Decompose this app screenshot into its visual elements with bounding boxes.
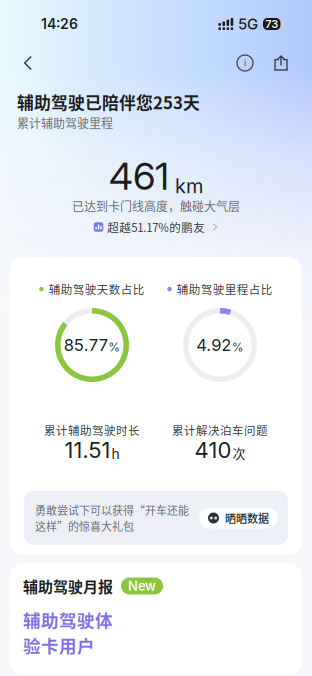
button[interactable]: Info [231, 49, 259, 77]
button[interactable]: 辅助驾驶月报 [0, 563, 312, 675]
button[interactable]: 超越51.17%的鹏友 [91, 220, 221, 234]
staticText: 73 [265, 17, 278, 31]
button[interactable]: Back [11, 48, 45, 78]
staticText: 辅助驾驶体 验卡用户 [23, 607, 113, 658]
staticText: 14:26 [41, 15, 78, 32]
staticText: 11.51 [64, 437, 110, 463]
staticText: 410 [194, 437, 231, 463]
staticText: 超越51.17%的鹏友 [107, 219, 205, 235]
staticText: 勇敢尝试下可以获得“开车还能 这样”的惊喜大礼包 [35, 502, 189, 534]
button[interactable]: 晒晒数据 [199, 507, 278, 528]
staticText: 辅助驾驶月报 [23, 575, 113, 597]
staticText: 4.92 [196, 335, 231, 355]
staticText: 累计解决泊车问题 [172, 422, 268, 438]
staticText: 累计辅助驾驶里程 [17, 114, 113, 132]
staticText: 461 [109, 153, 169, 199]
staticText: km [175, 174, 203, 198]
staticText: 辅助驾驶里程占比 [177, 281, 273, 297]
staticText: New [128, 578, 156, 594]
staticText: 辅助驾驶天数占比 [49, 281, 145, 297]
staticText: 次 [232, 443, 245, 462]
staticText: i [244, 58, 246, 68]
staticText: 85.77 [64, 335, 108, 355]
staticText: 5G [238, 15, 258, 33]
staticText: 辅助驾驶已陪伴您253天 [17, 90, 200, 114]
staticText: % [232, 340, 244, 354]
staticText: 晒晒数据 [225, 510, 269, 526]
staticText: 已达到卡门线高度，触碰大气层 [72, 197, 240, 215]
staticText: 累计辅助驾驶时长 [44, 422, 140, 438]
staticText: h [111, 445, 119, 462]
button[interactable]: Share [267, 49, 295, 77]
staticText: % [108, 340, 120, 354]
